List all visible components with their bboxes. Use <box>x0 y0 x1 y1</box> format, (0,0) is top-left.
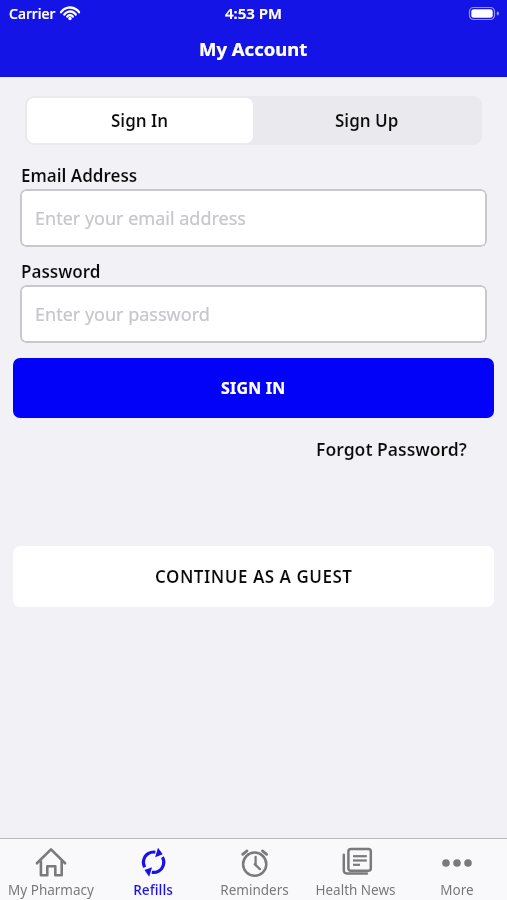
button[interactable]: Sign In <box>27 98 253 143</box>
staticText: Sign Up <box>335 109 399 132</box>
staticText: Enter your password <box>35 302 210 327</box>
button[interactable]: More <box>406 839 507 900</box>
staticText: More <box>440 881 474 899</box>
button[interactable]: Enter your email address <box>20 189 487 247</box>
button[interactable]: CONTINUE AS A GUEST <box>13 546 494 607</box>
button[interactable]: Refills <box>102 839 204 900</box>
staticText: My Account <box>199 36 308 61</box>
button[interactable]: Health News <box>305 839 406 900</box>
button[interactable]: My Pharmacy <box>0 839 102 900</box>
staticText: My Pharmacy <box>8 881 94 899</box>
staticText: Password <box>21 260 101 283</box>
staticText: CONTINUE AS A GUEST <box>155 565 353 588</box>
staticText: Reminders <box>220 881 289 899</box>
button[interactable]: Forgot Password? <box>316 437 467 461</box>
staticText: Refills <box>133 881 173 899</box>
staticText: Health News <box>315 881 396 899</box>
staticText: SIGN IN <box>221 377 286 399</box>
staticText: Email Address <box>21 164 138 187</box>
button[interactable]: Sign Up <box>253 98 480 143</box>
button[interactable]: Reminders <box>204 839 305 900</box>
staticText: Sign In <box>111 109 169 132</box>
button[interactable]: Enter your password <box>20 285 487 343</box>
staticText: Carrier <box>9 4 56 23</box>
staticText: Enter your email address <box>35 206 246 231</box>
staticText: 4:53 PM <box>225 3 282 23</box>
button[interactable]: SIGN IN <box>13 358 494 418</box>
